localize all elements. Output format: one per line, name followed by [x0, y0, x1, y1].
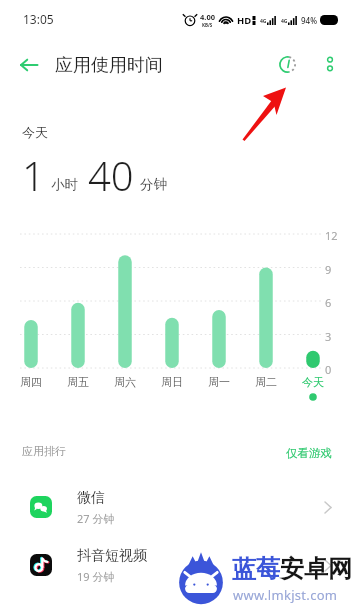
staticText: 周日	[161, 375, 183, 389]
staticText: KB/S	[202, 22, 213, 28]
button[interactable]: More options	[311, 45, 349, 83]
staticText: 今天	[302, 375, 324, 389]
button[interactable]: 抖音短视频	[0, 541, 356, 589]
staticText: 蓝莓	[232, 554, 280, 584]
staticText: 应用排行	[22, 444, 66, 458]
staticText: 1	[22, 148, 45, 202]
staticText: 仅看游戏	[286, 446, 332, 460]
staticText: HD	[237, 14, 252, 27]
staticText: 4G	[260, 18, 267, 25]
staticText: 13:05	[23, 11, 54, 27]
staticText: 周一	[208, 375, 230, 389]
button[interactable]: 微信	[0, 483, 356, 531]
staticText: 4G	[281, 18, 288, 25]
staticText: 27 分钟	[77, 511, 115, 526]
staticText: 小时	[51, 176, 78, 193]
staticText: 4.00	[200, 12, 215, 22]
staticText: 9	[325, 262, 332, 277]
staticText: 12	[325, 228, 338, 243]
staticText: 6	[325, 295, 332, 310]
staticText: 安卓网	[280, 554, 352, 584]
button[interactable]: 仅看游戏	[286, 446, 332, 460]
staticText: 40	[88, 148, 134, 202]
staticText: 19 分钟	[77, 569, 115, 584]
staticText: 周六	[114, 375, 136, 389]
staticText: 微信	[77, 489, 105, 507]
staticText: 抖音短视频	[77, 547, 147, 565]
staticText: www.lmkjst.com	[233, 586, 338, 604]
staticText: 应用使用时间	[55, 54, 163, 77]
staticText: 周二	[255, 375, 277, 389]
staticText: 94%	[301, 15, 317, 26]
staticText: 周四	[20, 375, 42, 389]
staticText: 今天	[22, 124, 48, 140]
staticText: 周五	[67, 375, 89, 389]
button[interactable]: Back	[8, 44, 50, 86]
staticText: 0	[325, 362, 332, 377]
staticText: 3	[325, 329, 332, 344]
staticText: 分钟	[140, 176, 167, 193]
button[interactable]: Screen time	[268, 45, 306, 83]
